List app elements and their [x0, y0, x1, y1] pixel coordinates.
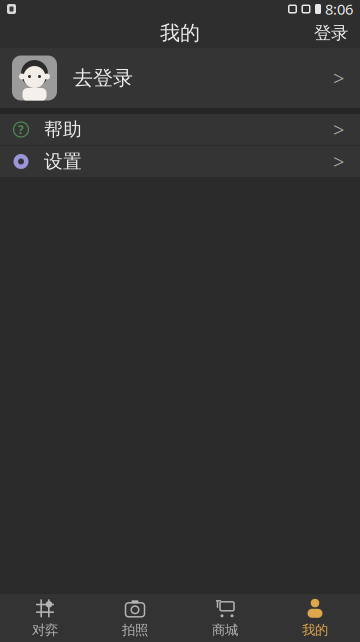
- button[interactable]: 对弈: [0, 594, 90, 642]
- button[interactable]: 我的: [270, 594, 360, 642]
- staticText: 8:06: [325, 0, 353, 19]
- staticText: 登录: [314, 22, 348, 44]
- staticText: 我的: [302, 622, 328, 638]
- button[interactable]: 去登录: [0, 48, 360, 108]
- button[interactable]: 登录: [302, 14, 360, 52]
- button[interactable]: ?: [0, 114, 360, 145]
- staticText: >: [333, 148, 344, 175]
- staticText: 拍照: [122, 622, 148, 638]
- staticText: 去登录: [73, 66, 133, 90]
- button[interactable]: 商城: [180, 594, 270, 642]
- button[interactable]: 设置: [0, 146, 360, 177]
- staticText: >: [333, 116, 344, 143]
- staticText: 商城: [212, 622, 238, 638]
- staticText: ?: [18, 121, 24, 137]
- staticText: 对弈: [32, 622, 58, 638]
- staticText: >: [333, 65, 344, 91]
- staticText: 我的: [160, 21, 200, 45]
- button[interactable]: 拍照: [90, 594, 180, 642]
- staticText: 帮助: [44, 118, 82, 141]
- staticText: 设置: [44, 150, 82, 173]
